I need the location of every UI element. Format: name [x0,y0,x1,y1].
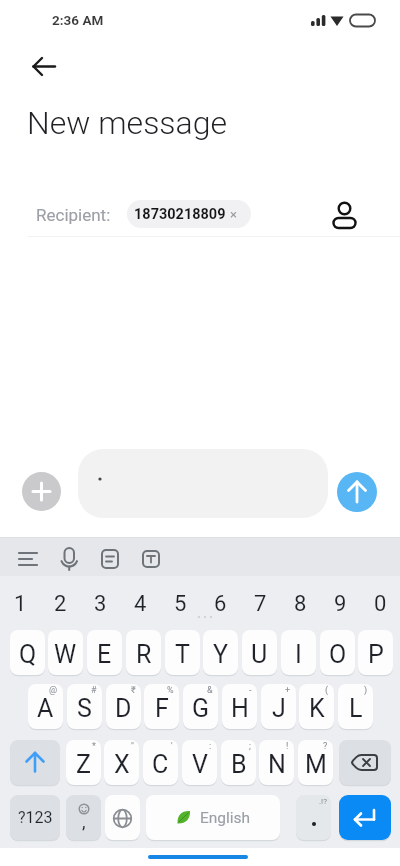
staticText: 3 [94,591,107,617]
staticText: 1 [14,591,27,617]
button[interactable]: 9 [320,584,360,624]
button[interactable]: , [66,795,101,840]
staticText: C [152,750,169,779]
staticText: 8 [294,591,307,617]
button[interactable]: I [281,630,316,675]
button[interactable]: T [165,630,200,675]
button[interactable]: X [104,740,139,785]
button[interactable]: L [338,684,373,729]
staticText: English [200,809,251,827]
button[interactable]: 3 [80,584,120,624]
button[interactable]: U [242,630,277,675]
button[interactable]: A [28,684,63,729]
button[interactable]: J [261,684,296,729]
staticText: 2 [54,591,67,617]
button[interactable]: ?123 [10,795,60,840]
staticText: , [82,811,86,832]
staticText: ; [249,741,251,752]
staticText: 2:36 AM [52,12,104,28]
staticText: A [37,694,54,723]
button[interactable]: 4 [120,584,160,624]
button[interactable]: H [222,684,257,729]
staticText: U [251,640,268,669]
staticText: 0 [374,591,387,617]
staticText: ₹ [131,685,136,696]
staticText: # [91,685,97,696]
button[interactable]: 5 [160,584,200,624]
staticText: F [155,694,169,723]
button[interactable] [337,472,377,512]
staticText: E [97,640,112,669]
button[interactable]: G [183,684,218,729]
staticText: @ [49,685,58,696]
staticText: 9 [334,591,347,617]
button[interactable]: C [143,740,178,785]
staticText: I [295,640,302,669]
staticText: 6 [214,591,227,617]
button[interactable]: E [87,630,122,675]
button[interactable] [92,541,128,577]
button[interactable]: M [298,740,333,785]
button[interactable]: 7 [240,584,280,624]
button[interactable]: Y [203,630,238,675]
staticText: 5 [174,591,187,617]
button[interactable] [133,541,169,577]
button[interactable]: 1 [0,584,40,624]
staticText: Recipient: [36,205,111,225]
staticText: Q [19,640,37,669]
staticText: B [231,750,247,779]
button[interactable] [105,795,140,840]
button[interactable]: W [48,630,83,675]
button[interactable]: 18730218809 [127,200,251,228]
button[interactable]: P [358,630,393,675]
button[interactable] [10,541,46,577]
button[interactable]: D [106,684,141,729]
staticText: & [207,685,213,696]
button[interactable]: R [126,630,161,675]
staticText: P [368,640,384,669]
button[interactable]: Q [10,630,45,675]
button[interactable]: K [299,684,334,729]
staticText: J [272,694,286,723]
staticText: ' [171,741,173,752]
staticText: R [136,640,152,669]
staticText: " [131,741,134,752]
staticText: K [309,694,325,723]
staticText: ?123 [18,808,53,827]
button[interactable]: 2 [40,584,80,624]
button[interactable] [10,740,60,785]
staticText: : [209,741,212,752]
button[interactable] [22,472,61,511]
staticText: O [329,640,347,669]
button[interactable]: N [259,740,294,785]
button[interactable]: B [221,740,256,785]
button[interactable]: .!? [296,795,331,840]
staticText: N [268,750,286,779]
button[interactable]: O [320,630,355,675]
staticText: D [115,694,132,723]
staticText: H [231,694,249,723]
staticText: 18730218809 [134,206,226,223]
button[interactable] [339,740,391,785]
button[interactable]: F [144,684,179,729]
staticText: 7 [254,591,267,617]
button[interactable]: V [182,740,217,785]
staticText: × [230,207,237,222]
button[interactable]: 0 [360,584,400,624]
staticText: .!? [319,797,327,806]
staticText: X [114,750,130,779]
button[interactable]: Z [66,740,101,785]
button[interactable]: S [67,684,102,729]
button[interactable] [51,541,87,577]
staticText: W [54,640,77,669]
button[interactable] [78,449,328,518]
button[interactable] [330,194,362,234]
button[interactable] [339,795,391,840]
staticText: ? [323,741,328,752]
button[interactable] [22,50,66,84]
button[interactable]: English [146,795,280,840]
button[interactable]: 8 [280,584,320,624]
staticText: - [249,685,252,696]
button[interactable]: 6 [200,584,240,624]
staticText: 4 [134,591,147,617]
